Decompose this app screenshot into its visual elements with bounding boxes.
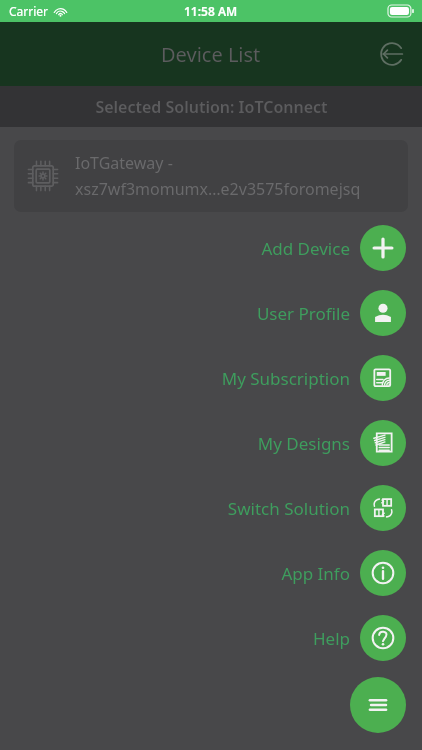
button[interactable]: Menu: [350, 677, 406, 733]
staticText: Switch Solution: [227, 497, 350, 520]
staticText: App Info: [281, 562, 350, 585]
button[interactable]: Help: [312, 615, 406, 661]
staticText: xsz7wf3momumx…e2v3575foromejsq: [75, 178, 361, 200]
button[interactable]: Add Device: [261, 225, 406, 271]
staticText: Selected Solution: IoTConnect: [95, 96, 328, 118]
button[interactable]: Log out: [370, 32, 414, 76]
staticText: 11:58 AM: [184, 3, 238, 19]
button[interactable]: My Subscription: [221, 355, 406, 401]
button[interactable]: User Profile: [256, 290, 406, 336]
button[interactable]: Selected Solution: IoTConnect: [0, 86, 422, 127]
staticText: Carrier: [9, 3, 49, 19]
staticText: User Profile: [256, 302, 350, 325]
staticText: My Subscription: [221, 367, 350, 390]
staticText: My Designs: [257, 432, 350, 455]
staticText: Help: [312, 627, 350, 650]
button[interactable]: IoTGateway -: [14, 140, 408, 212]
button[interactable]: Switch Solution: [227, 485, 406, 531]
button[interactable]: App Info: [281, 550, 406, 596]
staticText: Device List: [161, 41, 261, 68]
staticText: IoTGateway -: [75, 152, 173, 174]
staticText: Add Device: [261, 237, 350, 260]
button[interactable]: My Designs: [257, 420, 406, 466]
